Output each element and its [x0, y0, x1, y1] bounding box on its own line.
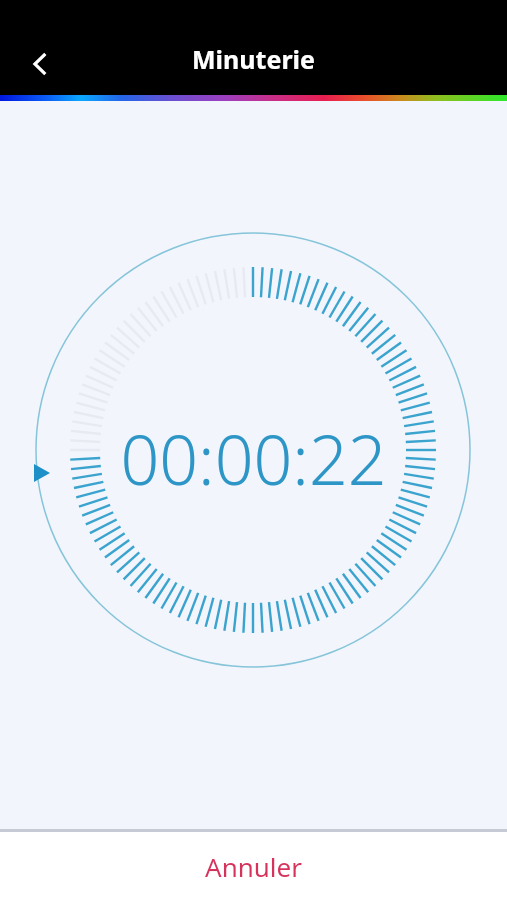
staticText: Annuler — [205, 849, 302, 884]
staticText: Minuterie — [192, 42, 315, 76]
button[interactable]: Annuler — [0, 832, 507, 900]
button[interactable]: Back — [12, 36, 68, 92]
staticText: 00:00:22 — [120, 412, 387, 505]
